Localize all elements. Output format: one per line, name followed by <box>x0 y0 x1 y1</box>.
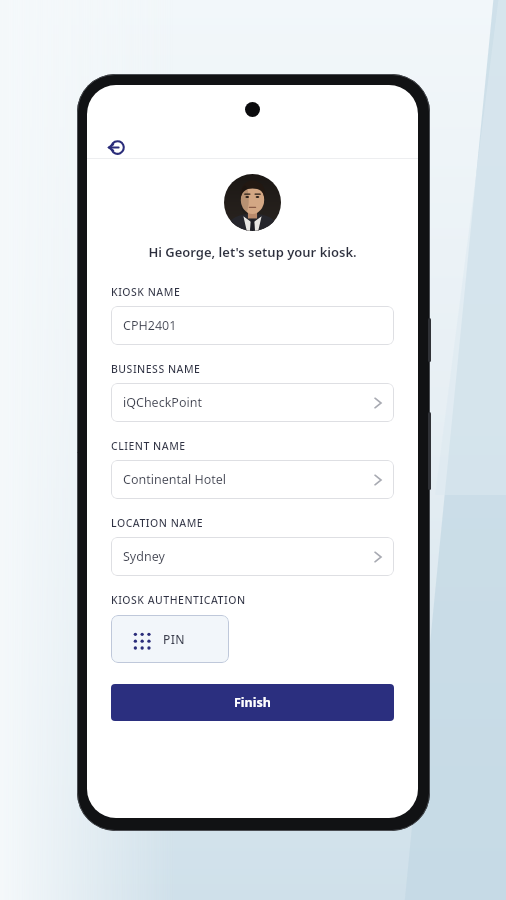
staticText: Sydney <box>123 548 374 565</box>
staticText: LOCATION NAME <box>111 516 204 530</box>
staticText: Finish <box>234 694 271 711</box>
staticText: BUSINESS NAME <box>111 362 201 376</box>
button[interactable]: Continental Hotel <box>111 460 394 499</box>
staticText: Continental Hotel <box>123 471 374 488</box>
button[interactable]: Finish <box>111 684 394 721</box>
staticText: KIOSK NAME <box>111 285 181 299</box>
button[interactable]: Sydney <box>111 537 394 576</box>
staticText: PIN <box>163 631 186 647</box>
staticText: iQCheckPoint <box>123 394 374 411</box>
button[interactable]: CPH2401 <box>111 306 394 345</box>
button[interactable]: Log out <box>99 130 133 164</box>
staticText: Hi George, let's setup your kiosk. <box>148 243 357 261</box>
staticText: CPH2401 <box>123 317 382 334</box>
button[interactable]: iQCheckPoint <box>111 383 394 422</box>
button[interactable]: PIN <box>111 615 229 663</box>
staticText: KIOSK AUTHENTICATION <box>111 593 246 607</box>
staticText: CLIENT NAME <box>111 439 186 453</box>
